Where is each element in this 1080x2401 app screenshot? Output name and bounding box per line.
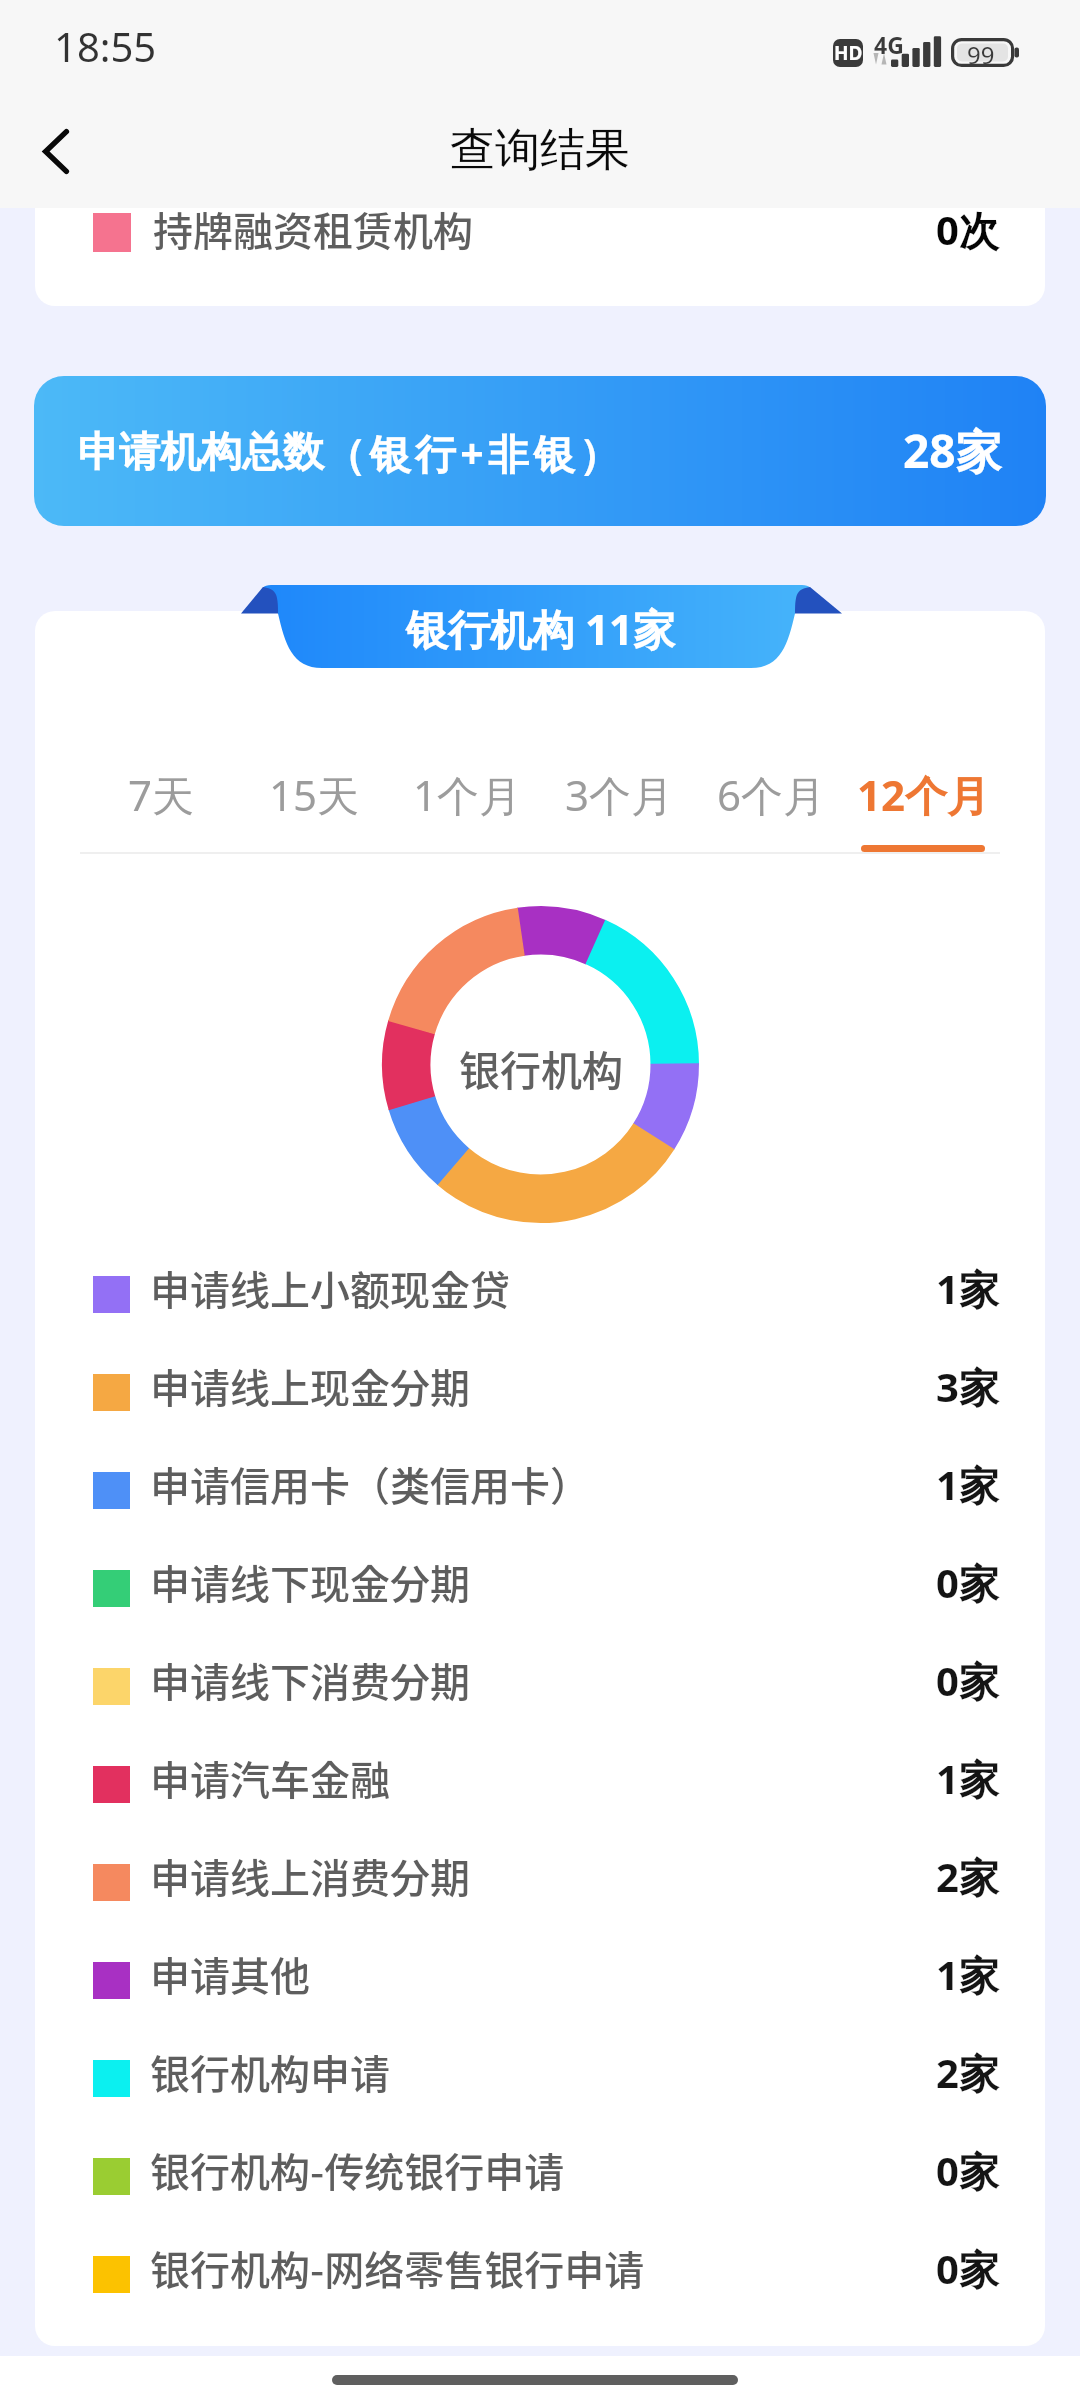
staticText: HD (834, 40, 863, 66)
button[interactable]: 申请线上小额现金贷 (93, 1245, 999, 1343)
staticText: 申请汽车金融 (150, 1749, 390, 1807)
staticText: 1家 (936, 1457, 999, 1512)
staticText: 0家 (936, 1653, 999, 1708)
button[interactable]: 申请其他 (93, 1931, 999, 2029)
staticText: 3个月 (565, 766, 674, 823)
button[interactable]: 6个月 (695, 766, 847, 852)
staticText: 0家 (936, 2143, 999, 2198)
button[interactable]: 申请汽车金融 (93, 1735, 999, 1833)
staticText: 1家 (936, 1751, 999, 1806)
staticText: 银行机构-传统银行申请 (150, 2141, 565, 2199)
button[interactable]: 银行机构 11家 (235, 580, 845, 675)
button[interactable]: 申请线下消费分期 (93, 1637, 999, 1735)
staticText: 申请机构总数 (78, 427, 324, 479)
button[interactable]: 15天 (238, 766, 391, 852)
staticText: 申请线下消费分期 (150, 1651, 470, 1709)
button[interactable]: 持牌融资租赁机构 (35, 208, 1045, 306)
staticText: 0家 (936, 1555, 999, 1610)
staticText: 银行机构 11家 (406, 600, 675, 657)
button[interactable]: 1个月 (391, 766, 543, 852)
staticText: 银行机构-网络零售银行申请 (150, 2239, 645, 2297)
staticText: 持牌融资租赁机构 (153, 208, 473, 258)
staticText: 银行机构申请 (150, 2043, 390, 2101)
staticText: 6个月 (717, 766, 826, 823)
staticText: 申请其他 (150, 1945, 310, 2003)
staticText: 15天 (269, 766, 360, 823)
staticText: 申请线下现金分期 (150, 1553, 470, 1611)
staticText: 1家 (936, 1947, 999, 2002)
staticText: 申请线上消费分期 (150, 1847, 470, 1905)
button[interactable]: 银行机构申请 (93, 2029, 999, 2127)
staticText: 2家 (936, 1849, 999, 1904)
staticText: 99 (967, 38, 995, 71)
staticText: 12个月 (857, 766, 990, 823)
button[interactable]: 申请线下现金分期 (93, 1539, 999, 1637)
staticText: 7天 (128, 766, 195, 823)
button[interactable]: 银行机构-网络零售银行申请 (93, 2225, 999, 2323)
staticText: 1个月 (413, 766, 522, 823)
staticText: 4G (874, 29, 904, 60)
button[interactable]: 3个月 (543, 766, 695, 852)
button[interactable]: 申请线上现金分期 (93, 1343, 999, 1441)
button[interactable]: Back (11, 106, 101, 196)
staticText: （银行+非银） (324, 425, 625, 481)
staticText: 0家 (936, 2241, 999, 2296)
staticText: 28家 (903, 419, 1002, 482)
staticText: 3家 (936, 1359, 999, 1414)
staticText: 申请线上现金分期 (150, 1357, 470, 1415)
staticText: 1家 (936, 1261, 999, 1316)
button[interactable]: 7天 (85, 766, 238, 852)
staticText: 18:55 (54, 19, 157, 73)
staticText: 0次 (936, 208, 999, 257)
staticText: 银行机构 (459, 1038, 623, 1097)
button[interactable]: 银行机构-传统银行申请 (93, 2127, 999, 2225)
staticText: 申请线上小额现金贷 (150, 1259, 510, 1317)
button[interactable]: 申请线上消费分期 (93, 1833, 999, 1931)
button[interactable]: 申请信用卡（类信用卡） (93, 1441, 999, 1539)
staticText: 查询结果 (450, 122, 630, 179)
button[interactable]: 12个月 (847, 766, 999, 852)
staticText: 2家 (936, 2045, 999, 2100)
button[interactable]: 申请机构总数 (34, 376, 1046, 526)
staticText: 申请信用卡（类信用卡） (150, 1455, 590, 1513)
